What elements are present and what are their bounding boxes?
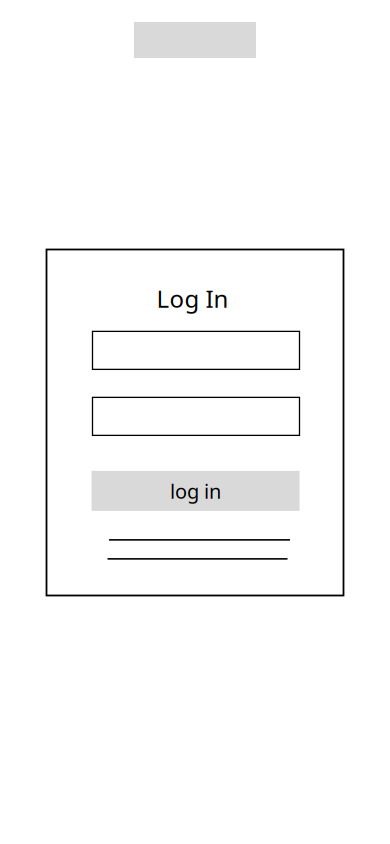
staticText: Log In (156, 282, 228, 314)
button[interactable]: Username (92, 331, 299, 369)
button[interactable]: Forgot password (104, 533, 294, 547)
staticText: log in (170, 478, 221, 504)
button[interactable]: log in (91, 471, 299, 511)
button[interactable]: Create account (102, 552, 292, 566)
button[interactable]: Password (92, 397, 299, 435)
